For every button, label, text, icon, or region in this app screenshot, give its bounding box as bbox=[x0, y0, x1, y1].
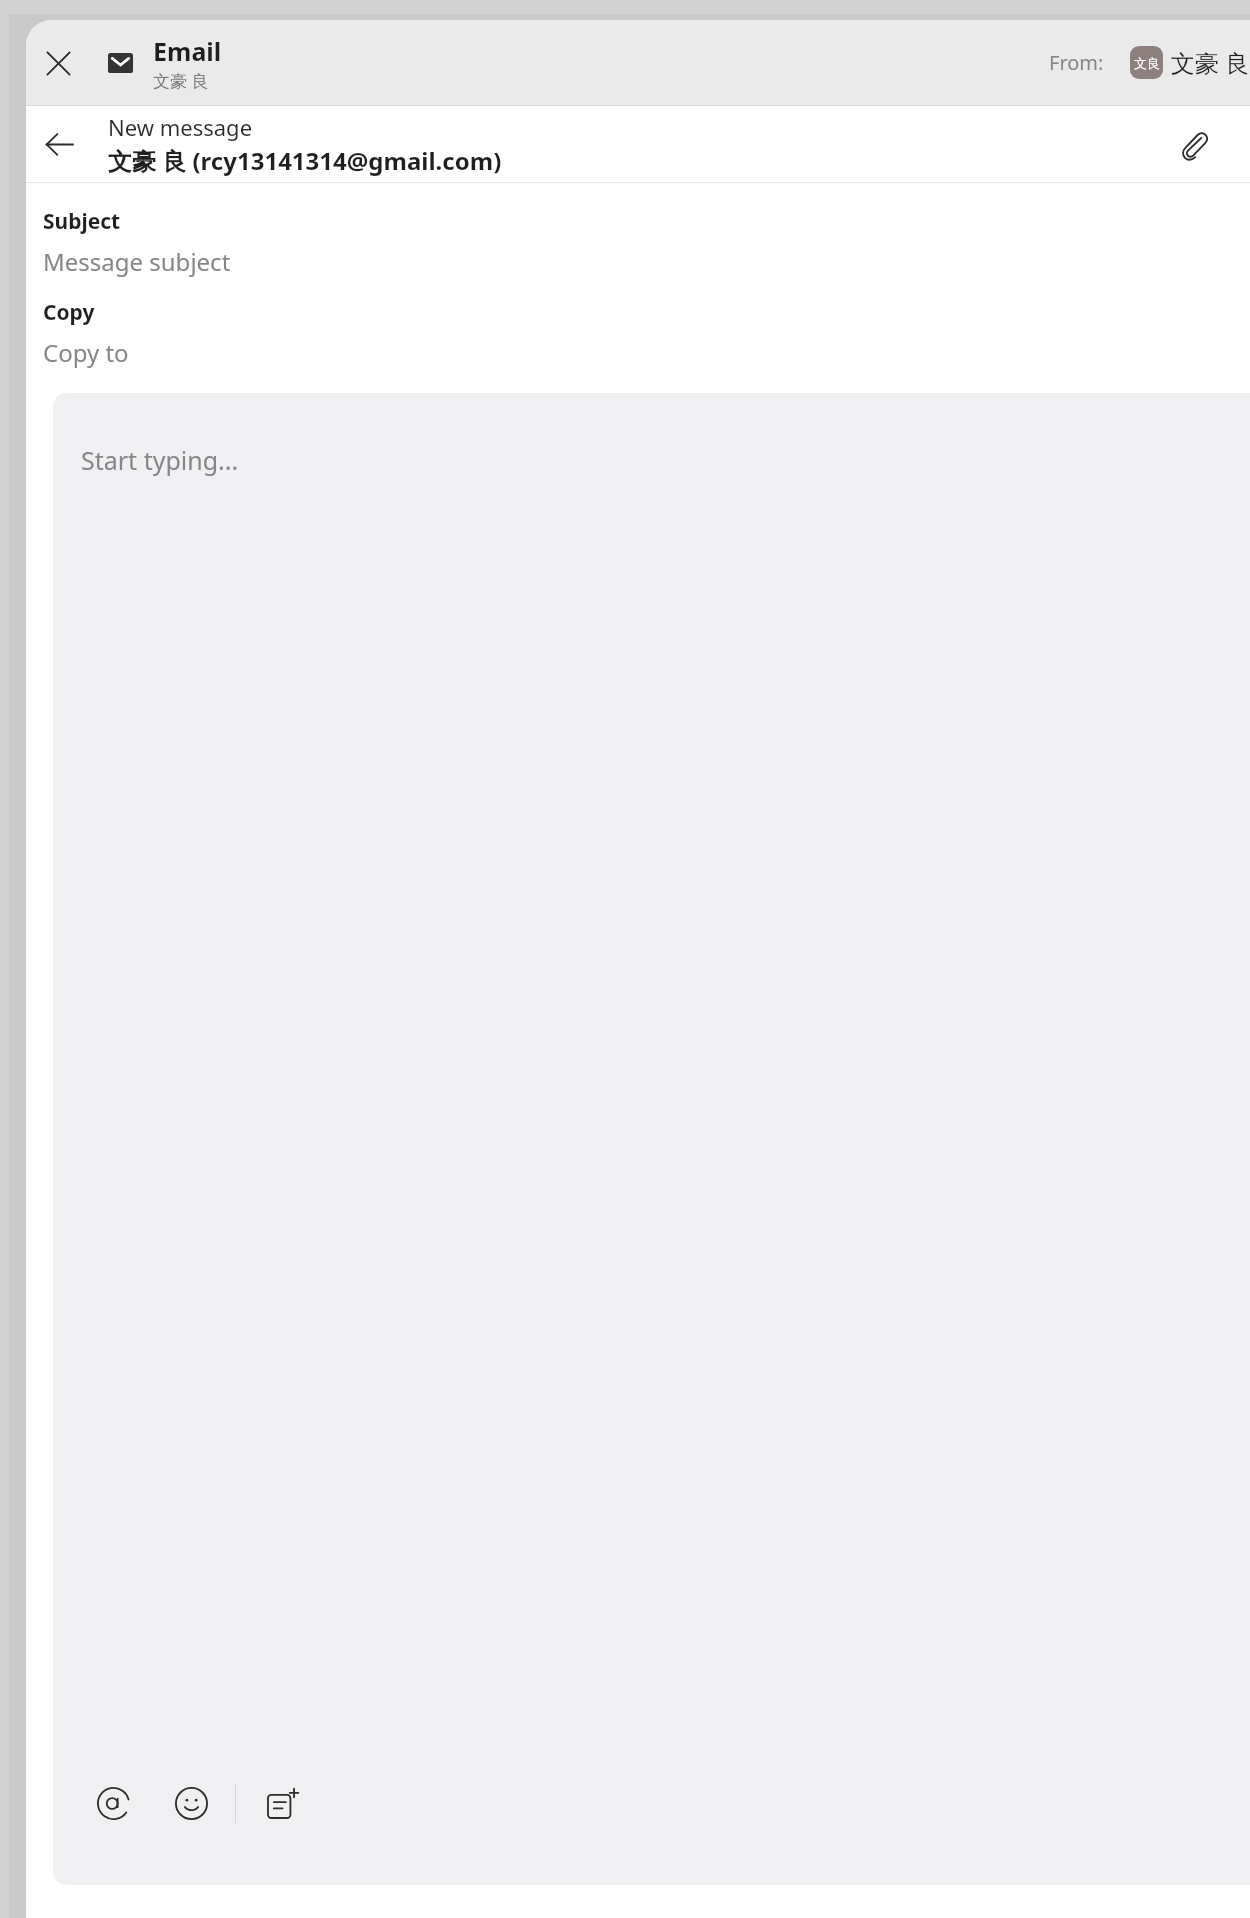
staticText: 文豪 良 (rcy13141314@gmail.com) bbox=[108, 144, 502, 177]
staticText: Start typing... bbox=[81, 443, 239, 477]
staticText: 文豪 良 bbox=[1171, 46, 1250, 79]
button[interactable]: Insert emoji bbox=[165, 1777, 217, 1829]
button[interactable]: Attach file bbox=[1166, 116, 1222, 172]
staticText: From: bbox=[1049, 49, 1104, 76]
staticText: Message subject bbox=[43, 245, 231, 278]
button[interactable]: Subject bbox=[43, 207, 1250, 278]
button[interactable]: Insert template bbox=[256, 1777, 308, 1829]
staticText: 文良 bbox=[1134, 55, 1160, 71]
button[interactable]: Back bbox=[30, 115, 88, 173]
staticText: Copy bbox=[43, 298, 95, 327]
button[interactable]: Start typing... bbox=[53, 393, 1250, 1885]
staticText: Subject bbox=[43, 207, 121, 236]
button[interactable]: Copy bbox=[43, 298, 1250, 369]
button[interactable]: Mention bbox=[87, 1777, 139, 1829]
staticText: New message bbox=[108, 112, 253, 142]
staticText: 文豪 良 bbox=[153, 69, 209, 92]
staticText: Copy to bbox=[43, 336, 129, 369]
button[interactable]: Close bbox=[30, 35, 86, 91]
staticText: Email bbox=[153, 34, 222, 68]
